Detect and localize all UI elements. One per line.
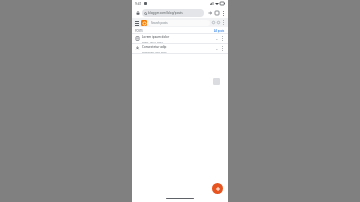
- button[interactable]: Search posts: [149, 20, 210, 26]
- button[interactable]: Post options: [220, 46, 225, 51]
- staticText: blogger.com/blog/posts: [148, 11, 183, 15]
- button[interactable]: Tabs: [213, 9, 220, 16]
- staticText: Published · Dec 2023: [142, 50, 167, 53]
- button[interactable]: More: [221, 20, 226, 25]
- button[interactable]: Post options: [220, 36, 225, 41]
- staticText: All posts: [214, 29, 225, 32]
- button[interactable]: [141, 20, 147, 26]
- staticText: Draft · Jan 3, 2024: [142, 40, 163, 43]
- button[interactable]: Share: [206, 9, 213, 16]
- staticText: 0: [216, 37, 218, 40]
- button[interactable]: Consectetur adip: [132, 44, 228, 53]
- staticText: Consectetur adip: [142, 45, 167, 49]
- button[interactable]: More options: [220, 10, 226, 16]
- staticText: 9:41: [135, 2, 142, 6]
- button[interactable]: Menu: [134, 20, 140, 26]
- staticText: Lorem ipsum dolor: [142, 35, 170, 39]
- staticText: Search posts: [151, 21, 168, 25]
- button[interactable]: blogger.com/blog/posts: [142, 9, 204, 17]
- button[interactable]: Site information: [134, 9, 141, 16]
- staticText: 0: [216, 47, 218, 50]
- staticText: POSTS: [135, 29, 143, 32]
- button[interactable]: Account: [216, 20, 221, 25]
- button[interactable]: New post: [212, 183, 223, 194]
- button[interactable]: Lorem ipsum dolor: [132, 34, 228, 43]
- button[interactable]: Filter: [211, 20, 216, 25]
